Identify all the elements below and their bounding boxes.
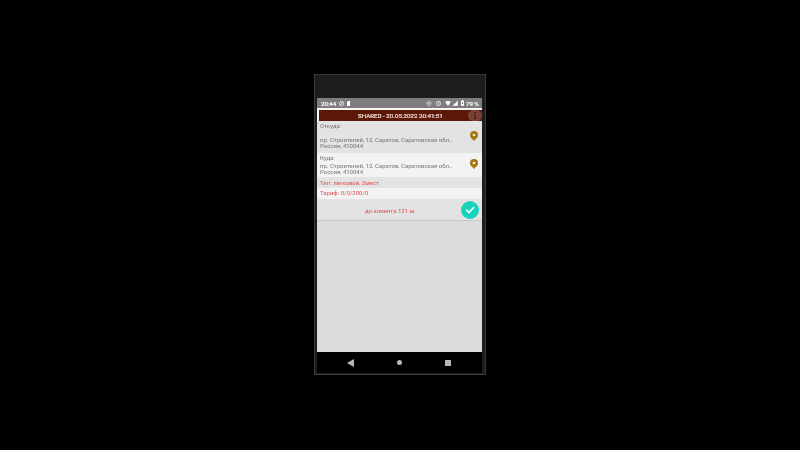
staticText: SHARED - 20.05.2022 20:41:51 bbox=[358, 112, 443, 119]
button[interactable]: Back bbox=[343, 355, 358, 370]
button[interactable]: Тип: легковой, 2мест bbox=[317, 177, 482, 188]
staticText: Тип: легковой, 2мест bbox=[320, 179, 379, 186]
staticText: 79 % bbox=[466, 100, 479, 107]
staticText: до клиента 121 м. bbox=[365, 207, 416, 214]
button[interactable]: Accept order bbox=[461, 201, 479, 219]
button[interactable]: Тариф: 0/0/200/0 bbox=[317, 188, 482, 199]
button[interactable]: Home bbox=[392, 355, 407, 370]
staticText: пр. Строителей, 12, Саратов, Саратовская… bbox=[320, 136, 452, 150]
staticText: Тариф: 0/0/200/0 bbox=[320, 189, 369, 196]
staticText: Откуда: bbox=[320, 122, 342, 129]
staticText: 20:44 bbox=[321, 100, 337, 107]
button[interactable]: Откуда: bbox=[317, 121, 482, 153]
button[interactable]: Recent apps bbox=[440, 355, 455, 370]
staticText: Куда: bbox=[320, 154, 335, 161]
button[interactable]: Куда: bbox=[317, 153, 482, 177]
staticText: пр. Строителей, 12, Саратов, Саратовская… bbox=[320, 162, 452, 176]
button[interactable]: SHARED - 20.05.2022 20:41:51 bbox=[319, 110, 482, 121]
button[interactable]: More options bbox=[468, 110, 482, 121]
